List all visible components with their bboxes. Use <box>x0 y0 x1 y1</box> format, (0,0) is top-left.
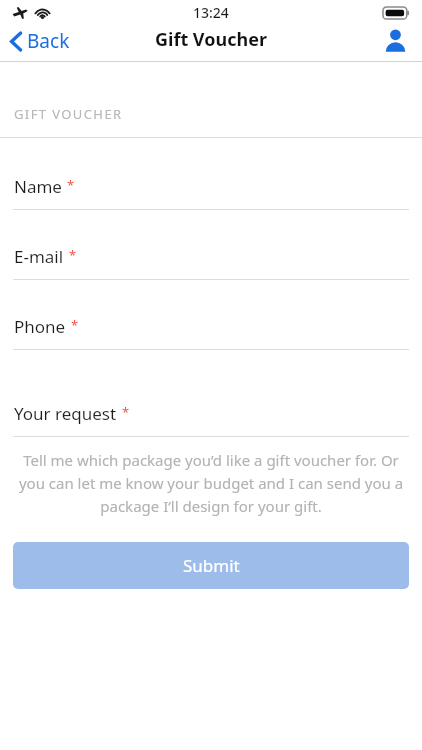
button[interactable]: E-mail <box>0 245 422 280</box>
staticText: * <box>71 316 79 334</box>
staticText: * <box>122 403 130 421</box>
staticText: * <box>67 176 75 194</box>
staticText: GIFT VOUCHER <box>14 105 123 123</box>
button[interactable]: Back <box>6 26 74 56</box>
button[interactable]: Account <box>378 23 412 57</box>
button[interactable]: Submit <box>13 542 409 589</box>
staticText: Tell me which package you’d like a gift … <box>18 450 404 516</box>
staticText: Phone <box>14 315 66 338</box>
button[interactable]: Phone <box>0 315 422 350</box>
staticText: Gift Voucher <box>155 27 267 52</box>
staticText: Name <box>14 175 62 198</box>
staticText: * <box>69 246 77 264</box>
button[interactable]: Name <box>0 175 422 210</box>
staticText: E-mail <box>14 245 64 268</box>
staticText: Submit <box>183 554 240 577</box>
staticText: Back <box>27 28 70 54</box>
staticText: Your request <box>14 402 117 425</box>
staticText: 13:24 <box>193 3 229 22</box>
